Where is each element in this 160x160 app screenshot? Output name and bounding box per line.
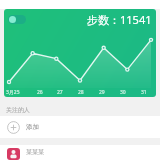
staticText: 3月25	[6, 89, 20, 96]
staticText: 某某某	[26, 148, 44, 156]
button[interactable]: 某某某	[0, 145, 160, 160]
staticText: 31	[141, 89, 147, 96]
staticText: 步数：11541	[87, 12, 152, 27]
staticText: 29	[99, 89, 105, 96]
button[interactable]: Toggle tracking	[4, 9, 156, 97]
button[interactable]: 添加	[0, 116, 160, 138]
button[interactable]: Toggle tracking	[8, 15, 26, 24]
staticText: 添加	[26, 123, 39, 131]
staticText: 27	[57, 89, 63, 96]
staticText: 30	[120, 89, 126, 96]
staticText: 关注的人	[6, 106, 30, 114]
staticText: 28	[78, 89, 84, 96]
staticText: 26	[37, 89, 43, 96]
